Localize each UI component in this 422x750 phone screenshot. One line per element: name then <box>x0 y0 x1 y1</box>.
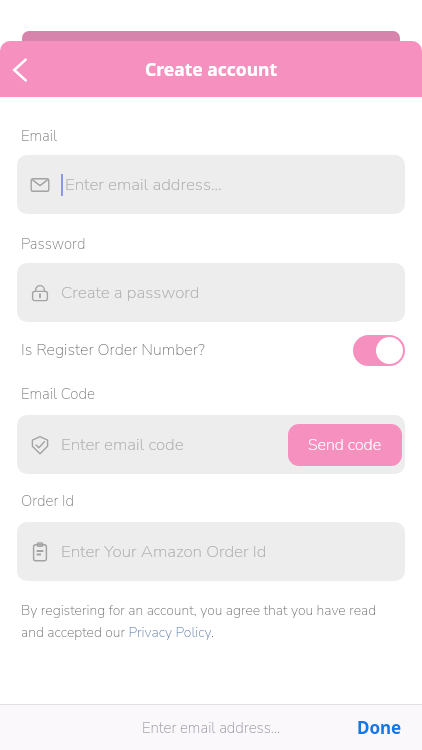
staticText: Enter email address... <box>142 718 281 738</box>
staticText: By registering for an account, you agree… <box>21 601 377 642</box>
button[interactable]: Enter Your Amazon Order Id <box>17 522 405 581</box>
staticText: Is Register Order Number? <box>21 339 205 361</box>
button[interactable]: Enter email address... <box>17 155 405 214</box>
button[interactable]: Create a password <box>17 263 405 322</box>
staticText: Create account <box>145 57 278 81</box>
staticText: Enter email code <box>61 433 184 456</box>
staticText: Enter Your Amazon Order Id <box>61 540 267 563</box>
staticText: Create a password <box>61 281 200 304</box>
staticText: Password <box>21 234 86 254</box>
staticText: Email Code <box>21 384 95 404</box>
button[interactable]: Done <box>357 716 402 739</box>
button[interactable]: Enter email code <box>17 415 405 474</box>
button[interactable]: Back <box>0 47 44 91</box>
staticText: Email <box>21 126 58 146</box>
button[interactable]: Register order number toggle <box>353 335 405 366</box>
staticText: Send code <box>308 434 382 456</box>
staticText: Order Id <box>21 491 75 511</box>
button[interactable]: Send code <box>288 424 402 466</box>
staticText: Done <box>357 716 402 739</box>
staticText: Enter email address... <box>65 173 222 196</box>
